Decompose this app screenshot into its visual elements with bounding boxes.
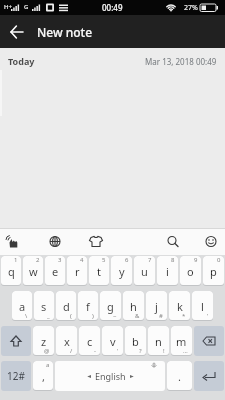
- button[interactable]: [135, 228, 180, 255]
- staticText: .: [178, 369, 181, 384]
- staticText: ~: [113, 312, 117, 320]
- staticText: ': [207, 312, 209, 320]
- button[interactable]: j: [146, 291, 167, 320]
- button[interactable]: f: [78, 291, 98, 320]
- staticText: r: [75, 264, 80, 279]
- staticText: -: [94, 347, 96, 355]
- staticText: 27%: [184, 3, 198, 13]
- button[interactable]: e: [45, 256, 65, 285]
- button[interactable]: b: [125, 326, 146, 355]
- staticText: Today: [8, 55, 35, 67]
- button[interactable]: a: [12, 291, 32, 320]
- staticText: …: [183, 347, 188, 355]
- button[interactable]: k: [169, 291, 190, 320]
- staticText: 4: [80, 256, 84, 264]
- staticText: G: [24, 3, 29, 11]
- staticText: ): [92, 312, 94, 320]
- staticText: English: [95, 370, 126, 382]
- staticText: #: [159, 312, 163, 320]
- staticText: o: [187, 264, 194, 279]
- staticText: d: [63, 299, 70, 314]
- staticText: z: [41, 334, 47, 349]
- staticText: l: [201, 299, 204, 314]
- staticText: g: [107, 299, 114, 314]
- staticText: /: [70, 347, 73, 355]
- staticText: Mar 13, 2018 00:49: [145, 56, 217, 67]
- staticText: t: [97, 264, 101, 279]
- staticText: ?: [139, 347, 142, 355]
- staticText: a: [46, 361, 50, 369]
- staticText: 00:49: [102, 2, 123, 13]
- button[interactable]: p: [203, 256, 224, 285]
- staticText: 6: [125, 256, 129, 264]
- button[interactable]: s: [34, 291, 54, 320]
- button[interactable]: English: [55, 361, 165, 391]
- button[interactable]: r: [67, 256, 87, 285]
- staticText: e: [52, 264, 59, 279]
- staticText: @: [44, 347, 50, 355]
- staticText: m: [176, 334, 187, 349]
- button[interactable]: w: [23, 256, 43, 285]
- staticText: 7: [148, 256, 152, 264]
- button[interactable]: .: [167, 361, 192, 390]
- staticText: 2: [36, 256, 40, 264]
- staticText: y: [119, 264, 125, 279]
- staticText: H+: [4, 3, 12, 11]
- staticText: (: [70, 312, 72, 320]
- button[interactable]: c: [79, 326, 100, 355]
- button[interactable]: [0, 15, 33, 48]
- button[interactable]: d: [56, 291, 76, 320]
- staticText: 12#: [7, 369, 25, 383]
- button[interactable]: ,: [33, 361, 53, 390]
- staticText: 9: [194, 256, 198, 264]
- button[interactable]: [0, 228, 45, 255]
- staticText: i: [166, 264, 169, 279]
- staticText: s: [41, 299, 47, 314]
- button[interactable]: [90, 228, 135, 255]
- button[interactable]: i: [157, 256, 178, 285]
- staticText: _: [47, 312, 50, 320]
- staticText: n: [155, 334, 162, 349]
- staticText: j: [155, 299, 158, 314]
- button[interactable]: [45, 228, 90, 255]
- staticText: f: [86, 299, 90, 314]
- button[interactable]: m: [171, 326, 192, 355]
- staticText: x: [64, 334, 70, 349]
- button[interactable]: [180, 228, 225, 255]
- staticText: 1: [14, 256, 18, 264]
- staticText: 5: [102, 256, 106, 264]
- button[interactable]: y: [111, 256, 132, 285]
- staticText: p: [210, 264, 217, 279]
- button[interactable]: n: [148, 326, 169, 355]
- staticText: New note: [37, 24, 93, 40]
- staticText: k: [177, 299, 183, 314]
- staticText: w: [29, 264, 38, 279]
- staticText: c: [87, 334, 93, 349]
- staticText: ': [117, 347, 119, 355]
- staticText: ,: [42, 369, 45, 384]
- button[interactable]: o: [180, 256, 201, 285]
- staticText: q: [8, 264, 15, 279]
- button[interactable]: 12#: [1, 361, 31, 391]
- button[interactable]: t: [89, 256, 109, 285]
- button[interactable]: z: [33, 326, 54, 355]
- button[interactable]: q: [1, 256, 21, 285]
- button[interactable]: [1, 326, 31, 356]
- staticText: h: [130, 299, 137, 314]
- button[interactable]: v: [102, 326, 123, 355]
- staticText: b: [132, 334, 139, 349]
- staticText: &: [135, 312, 140, 320]
- button[interactable]: u: [134, 256, 155, 285]
- button[interactable]: g: [100, 291, 121, 320]
- staticText: 0: [217, 256, 221, 264]
- button[interactable]: l: [192, 291, 213, 320]
- staticText: \: [25, 312, 28, 320]
- button[interactable]: x: [56, 326, 77, 355]
- button[interactable]: [194, 361, 224, 391]
- staticText: *: [182, 312, 186, 320]
- staticText: a: [19, 299, 26, 314]
- staticText: 8: [171, 256, 175, 264]
- staticText: 3: [58, 256, 62, 264]
- button[interactable]: [194, 326, 224, 356]
- button[interactable]: h: [123, 291, 144, 320]
